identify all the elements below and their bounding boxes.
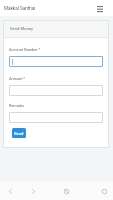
button[interactable] bbox=[9, 112, 103, 123]
button[interactable]: Stop loading bbox=[58, 181, 74, 197]
button[interactable]: Send bbox=[12, 128, 26, 138]
staticText: Remarks bbox=[9, 103, 24, 107]
staticText: Makkal Santhai bbox=[4, 6, 36, 11]
button[interactable]: Back bbox=[2, 181, 18, 197]
button[interactable] bbox=[9, 85, 103, 96]
button[interactable]: Reload bbox=[96, 181, 112, 197]
button[interactable] bbox=[9, 56, 103, 67]
staticText: Amount * bbox=[9, 76, 25, 80]
staticText: Send Money bbox=[10, 26, 33, 31]
staticText: Account Number * bbox=[9, 47, 41, 51]
staticText: Send bbox=[14, 131, 24, 136]
button[interactable]: Menu bbox=[94, 3, 105, 14]
button[interactable]: Forward bbox=[25, 181, 41, 197]
